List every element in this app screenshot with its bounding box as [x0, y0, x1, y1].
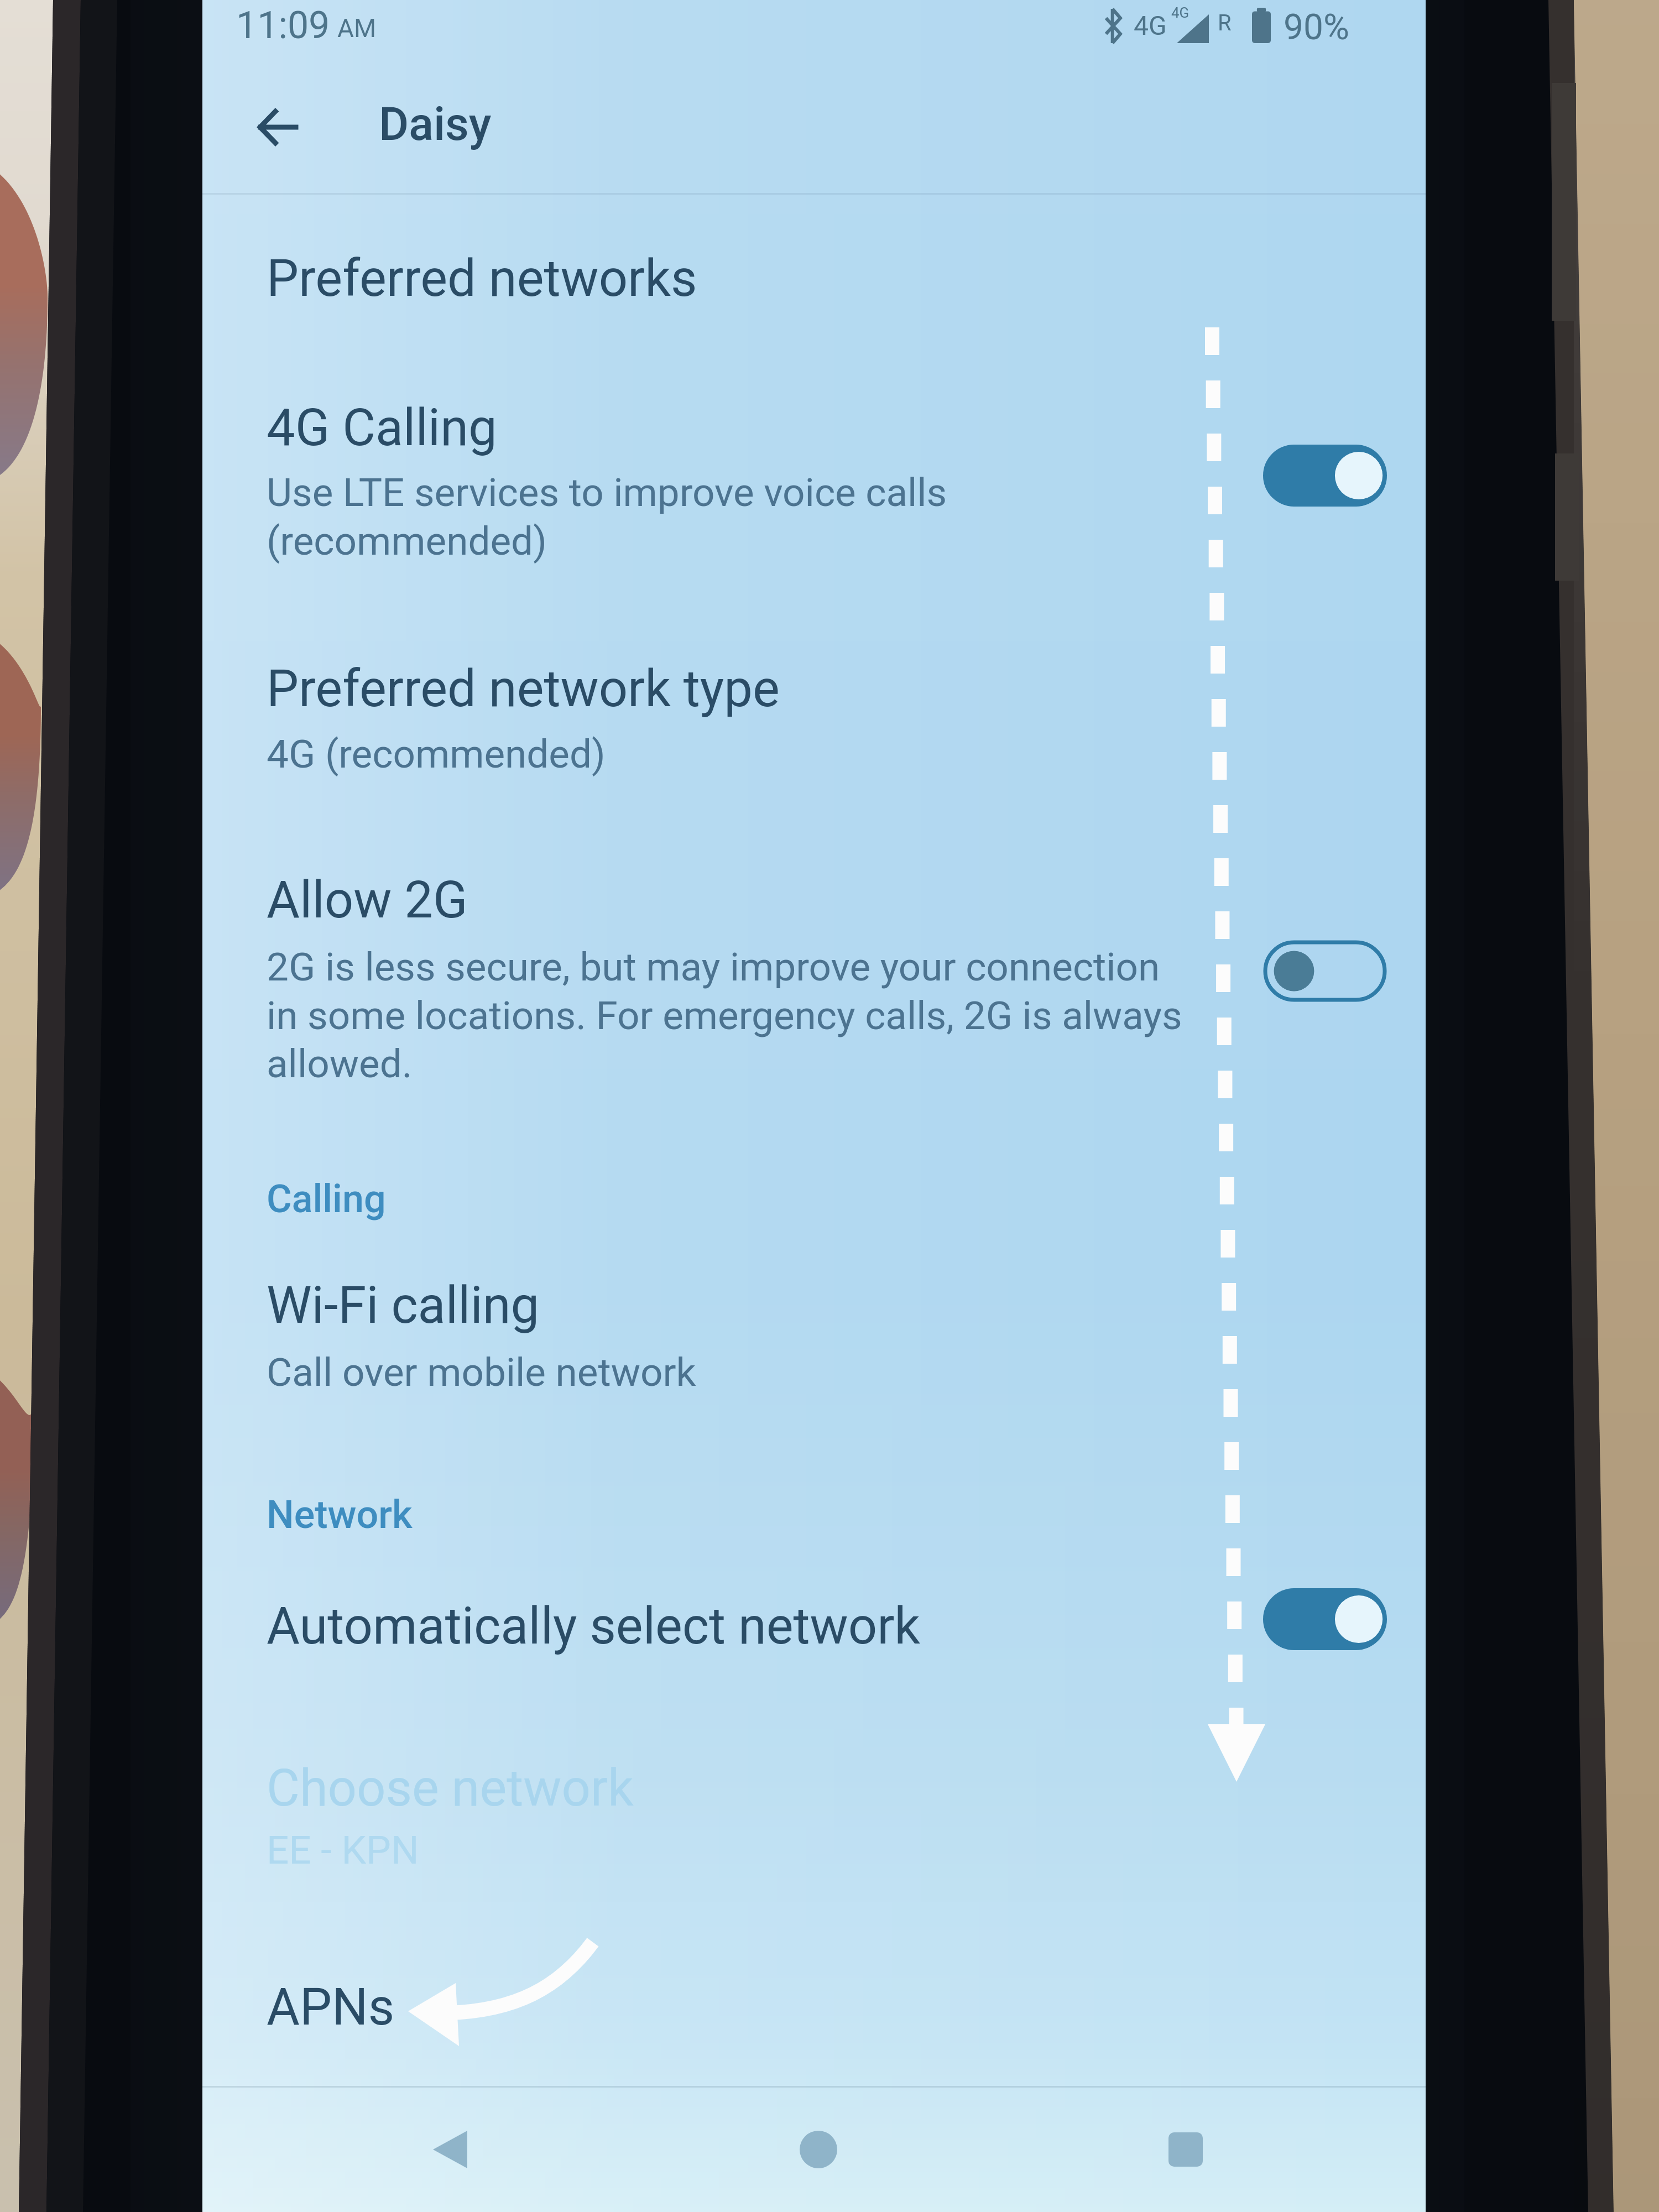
staticText: allowed. — [267, 1041, 413, 1087]
button[interactable]: Wi-Fi calling — [202, 1239, 1426, 1438]
button[interactable]: Choose network — [202, 1731, 1426, 1891]
staticText: APNs — [267, 1978, 395, 2037]
staticText: Network — [267, 1492, 413, 1537]
staticText: 2G is less secure, but may improve your … — [267, 944, 1160, 990]
staticText: Allow 2G — [267, 870, 468, 930]
staticText: Choose network — [267, 1759, 634, 1818]
button[interactable]: APNs — [202, 1936, 1426, 2057]
staticText: 4G Calling — [267, 398, 497, 458]
staticText: 11:09 — [236, 3, 330, 48]
button[interactable]: Preferred network type — [202, 630, 1426, 818]
staticText: Preferred network type — [267, 659, 780, 719]
button[interactable]: Recent apps — [1151, 2115, 1220, 2184]
button[interactable]: Automatically select network — [202, 1548, 1426, 1703]
staticText: 4G — [1134, 10, 1167, 41]
button[interactable]: System back — [416, 2115, 484, 2184]
staticText: 90% — [1284, 7, 1349, 48]
staticText: Calling — [267, 1176, 386, 1222]
staticText: 4G — [1171, 4, 1190, 21]
button[interactable]: 4G Calling — [202, 213, 1426, 630]
staticText: (recommended) — [267, 518, 547, 564]
staticText: Call over mobile network — [267, 1349, 696, 1395]
staticText: EE - KPN — [267, 1827, 419, 1873]
button[interactable]: Daisy — [364, 77, 618, 166]
staticText: in some locations. For emergency calls, … — [267, 993, 1182, 1039]
staticText: Wi-Fi calling — [267, 1276, 540, 1335]
button[interactable]: Allow 2G — [202, 818, 1426, 1123]
button[interactable]: Switch on — [1263, 445, 1387, 507]
staticText: R — [1218, 10, 1232, 36]
staticText: AM — [337, 13, 377, 43]
staticText: 4G (recommended) — [267, 731, 606, 777]
staticText: Use LTE services to improve voice calls — [267, 469, 947, 515]
button[interactable]: Switch off — [1263, 940, 1387, 1002]
staticText: Preferred networks — [267, 249, 697, 309]
staticText: Daisy — [379, 97, 492, 151]
staticText: Automatically select network — [267, 1597, 920, 1656]
button[interactable]: Switch on — [1263, 1588, 1387, 1650]
button[interactable]: Back — [239, 88, 316, 166]
button[interactable]: Home — [784, 2115, 853, 2184]
